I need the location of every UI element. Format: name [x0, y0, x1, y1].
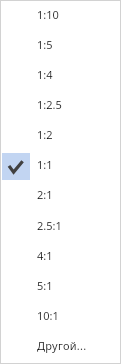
- staticText: Другой...: [37, 338, 87, 353]
- staticText: 4:1: [37, 248, 53, 263]
- staticText: 5:1: [37, 278, 53, 293]
- button[interactable]: 1:10: [0, 0, 121, 30]
- button[interactable]: 1:5: [0, 30, 121, 60]
- staticText: 10:1: [37, 308, 59, 323]
- staticText: 1:2: [37, 127, 53, 142]
- staticText: 1:2.5: [37, 97, 62, 112]
- button[interactable]: 1:2.5: [0, 90, 121, 120]
- button[interactable]: 5:1: [0, 271, 121, 301]
- other: Selected: [2, 153, 29, 180]
- button[interactable]: 2.5:1: [0, 211, 121, 241]
- button[interactable]: 10:1: [0, 301, 121, 331]
- button[interactable]: Другой...: [0, 331, 121, 361]
- staticText: 2.5:1: [37, 218, 62, 233]
- button[interactable]: 1:2: [0, 120, 121, 150]
- button[interactable]: 2:1: [0, 180, 121, 210]
- staticText: 1:5: [37, 37, 53, 52]
- button[interactable]: 1:4: [0, 60, 121, 90]
- staticText: 1:4: [37, 67, 53, 82]
- button[interactable]: Selected: [0, 150, 121, 180]
- button[interactable]: 4:1: [0, 241, 121, 271]
- staticText: 1:10: [37, 7, 59, 22]
- staticText: 1:1: [37, 157, 53, 172]
- staticText: 2:1: [37, 187, 53, 202]
